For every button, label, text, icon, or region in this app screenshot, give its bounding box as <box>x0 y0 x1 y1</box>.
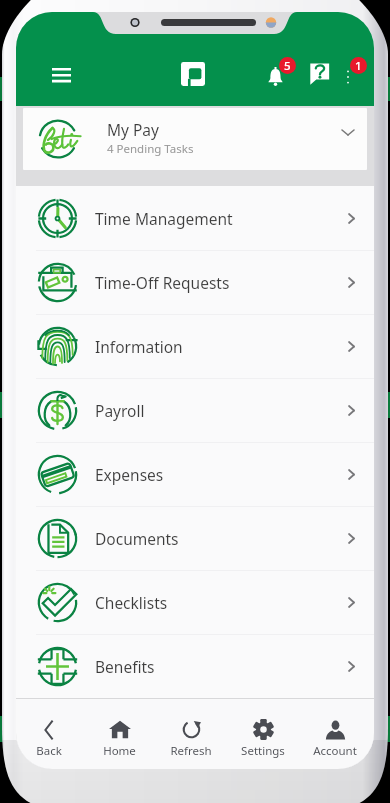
button[interactable]: Checklists <box>16 570 374 634</box>
button[interactable]: Documents <box>16 506 374 570</box>
button[interactable]: Paycom <box>181 62 205 86</box>
staticText: Back <box>36 743 62 759</box>
button[interactable]: Benefits <box>16 634 374 698</box>
staticText: Time-Off Requests <box>95 272 230 293</box>
staticText: My Pay <box>107 119 159 140</box>
staticText: 5 <box>284 58 291 74</box>
button[interactable]: Menu <box>39 53 83 97</box>
button[interactable]: Information <box>16 314 374 378</box>
button[interactable]: Help <box>299 54 339 94</box>
button[interactable]: More options <box>330 51 372 93</box>
button[interactable]: Back <box>16 699 84 769</box>
staticText: 1 <box>355 58 362 74</box>
button[interactable]: Payroll <box>16 378 374 442</box>
button[interactable]: Time-Off Requests <box>16 250 374 314</box>
staticText: Account <box>313 743 357 759</box>
button[interactable]: Notifications <box>255 51 301 97</box>
button[interactable]: Home <box>84 699 155 769</box>
staticText: Expenses <box>95 464 164 485</box>
button[interactable]: Settings <box>227 699 299 769</box>
button[interactable]: Account <box>299 699 371 769</box>
staticText: Checklists <box>95 592 168 613</box>
button[interactable]: My Pay <box>23 108 367 170</box>
staticText: Information <box>95 336 183 357</box>
staticText: Time Management <box>95 208 233 229</box>
staticText: Payroll <box>95 400 145 421</box>
button[interactable]: Expenses <box>16 442 374 506</box>
button[interactable]: Refresh <box>155 699 227 769</box>
staticText: Home <box>103 743 136 759</box>
staticText: Benefits <box>95 656 155 677</box>
staticText: Settings <box>241 743 285 759</box>
button[interactable]: Time Management <box>16 186 374 250</box>
staticText: Refresh <box>170 743 212 759</box>
staticText: 4 Pending Tasks <box>107 141 194 157</box>
staticText: Documents <box>95 528 179 549</box>
